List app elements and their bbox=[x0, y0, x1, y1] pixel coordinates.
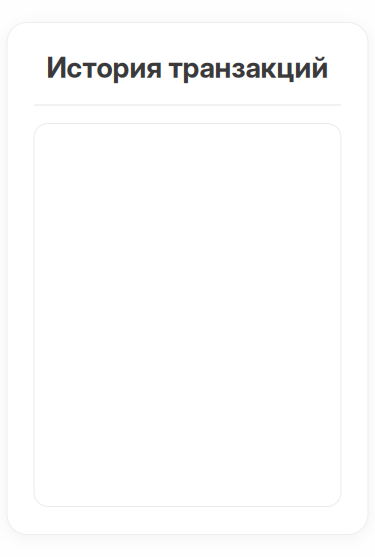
staticText: История транзакций bbox=[46, 51, 328, 84]
